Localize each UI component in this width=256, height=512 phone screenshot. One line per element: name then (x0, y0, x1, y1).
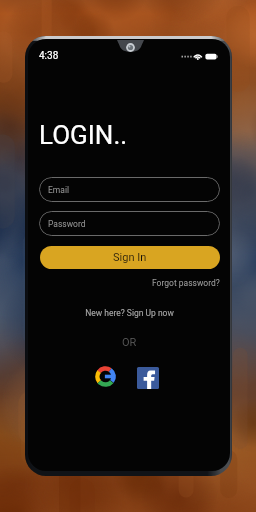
button[interactable]: Sign in with Facebook (137, 367, 159, 389)
button[interactable]: New here? Sign Up now (31, 305, 227, 320)
button[interactable]: Forgot password? (146, 275, 220, 290)
button[interactable]: Email (39, 177, 220, 202)
staticText: LOGIN.. (39, 120, 128, 150)
staticText: OR (122, 336, 137, 349)
staticText: 4:38 (39, 50, 59, 62)
button[interactable]: Password (39, 211, 220, 236)
staticText: Password (48, 219, 86, 229)
staticText: Email (48, 185, 70, 195)
staticText: Forgot password? (152, 278, 220, 288)
button[interactable]: Sign In (40, 246, 220, 269)
button[interactable]: Sign in with Google (95, 366, 116, 387)
staticText: Sign In (113, 251, 147, 264)
staticText: New here? Sign Up now (85, 308, 174, 318)
